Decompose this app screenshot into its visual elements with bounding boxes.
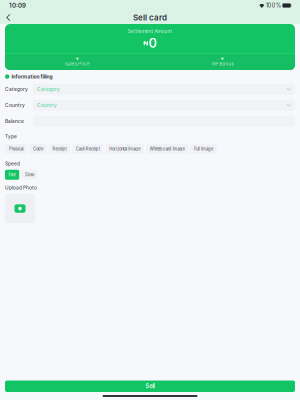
staticText: Settlement Amount (127, 28, 172, 34)
staticText: VIP Bonus (211, 61, 233, 67)
button[interactable]: Fast (5, 170, 19, 180)
staticText: Sell card (133, 13, 167, 22)
button[interactable]: Code (29, 144, 47, 154)
staticText: Sales Price (65, 61, 90, 67)
staticText: Whiteboard Image (150, 146, 185, 151)
button[interactable]: Slow (21, 170, 38, 180)
staticText: Cash Receipt (76, 146, 100, 151)
button[interactable]: Receipt (49, 144, 70, 154)
staticText: Sell (145, 383, 154, 390)
button[interactable]: Upload photo (5, 194, 35, 223)
staticText: Category (5, 86, 28, 92)
button[interactable]: Physical (5, 144, 27, 154)
staticText: 100% (266, 2, 281, 9)
staticText: Full Image (194, 146, 213, 151)
staticText: 0 (149, 35, 157, 51)
button[interactable]: Whiteboard Image (146, 144, 188, 154)
button[interactable]: Back (0, 12, 17, 23)
staticText: Information filling (11, 73, 52, 80)
button[interactable]: Cash Receipt (72, 144, 103, 154)
staticText: Type (5, 134, 17, 139)
staticText: Code (33, 146, 43, 151)
staticText: Speed (5, 161, 20, 167)
button[interactable]: Category (33, 84, 295, 95)
staticText: Fast (9, 172, 16, 177)
staticText: Slow (25, 172, 34, 177)
staticText: Country (37, 102, 57, 108)
staticText: Country (5, 102, 25, 108)
staticText: ₦ (143, 39, 148, 47)
staticText: Physical (9, 146, 24, 151)
staticText: Category (37, 86, 60, 92)
button[interactable]: Sell (5, 380, 295, 392)
button[interactable]: Full Image (190, 144, 217, 154)
button[interactable]: Horizontal Image (106, 144, 144, 154)
staticText: Balance (5, 118, 24, 124)
button[interactable]: Country (33, 100, 295, 111)
staticText: 10:09 (9, 2, 26, 9)
staticText: Receipt (52, 146, 66, 151)
staticText: Upload Photo (5, 185, 37, 190)
staticText: Horizontal Image (109, 146, 140, 151)
